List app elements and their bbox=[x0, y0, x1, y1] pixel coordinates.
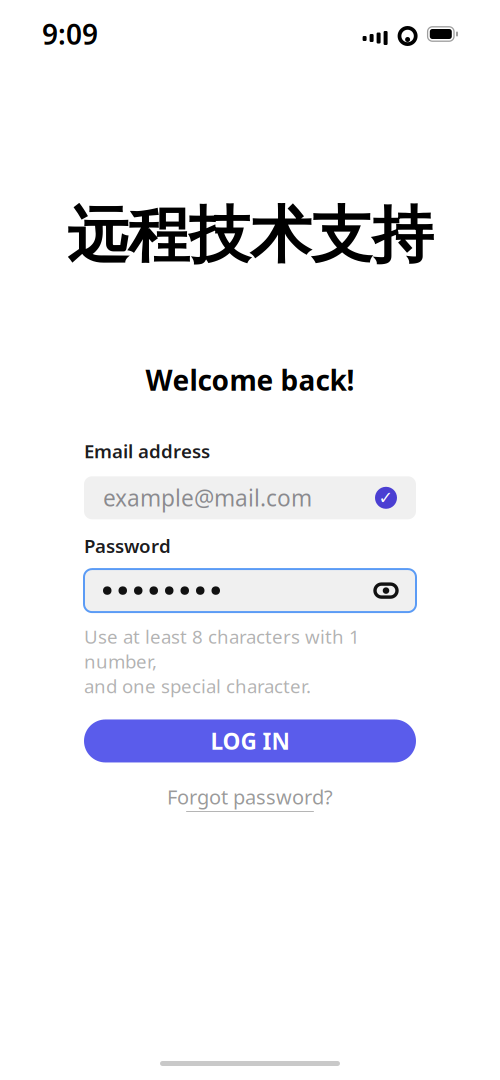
staticText: Email address bbox=[84, 438, 210, 463]
staticText: Password bbox=[84, 533, 171, 558]
staticText: Welcome back! bbox=[145, 361, 354, 398]
staticText: 远程技术支持 bbox=[67, 198, 433, 273]
button[interactable]: example@mail.com bbox=[84, 476, 416, 519]
staticText: and one special character. bbox=[84, 674, 311, 698]
button[interactable]: LOG IN bbox=[84, 719, 416, 762]
staticText: Use at least 8 characters with 1 number, bbox=[84, 624, 360, 674]
staticText: ✓ bbox=[378, 488, 393, 508]
button[interactable]: Forgot password? bbox=[167, 783, 333, 812]
staticText: Forgot password? bbox=[167, 783, 333, 810]
staticText: example@mail.com bbox=[103, 483, 312, 513]
button[interactable] bbox=[84, 569, 416, 612]
staticText: 9:09 bbox=[42, 15, 98, 53]
staticText: LOG IN bbox=[210, 726, 289, 756]
